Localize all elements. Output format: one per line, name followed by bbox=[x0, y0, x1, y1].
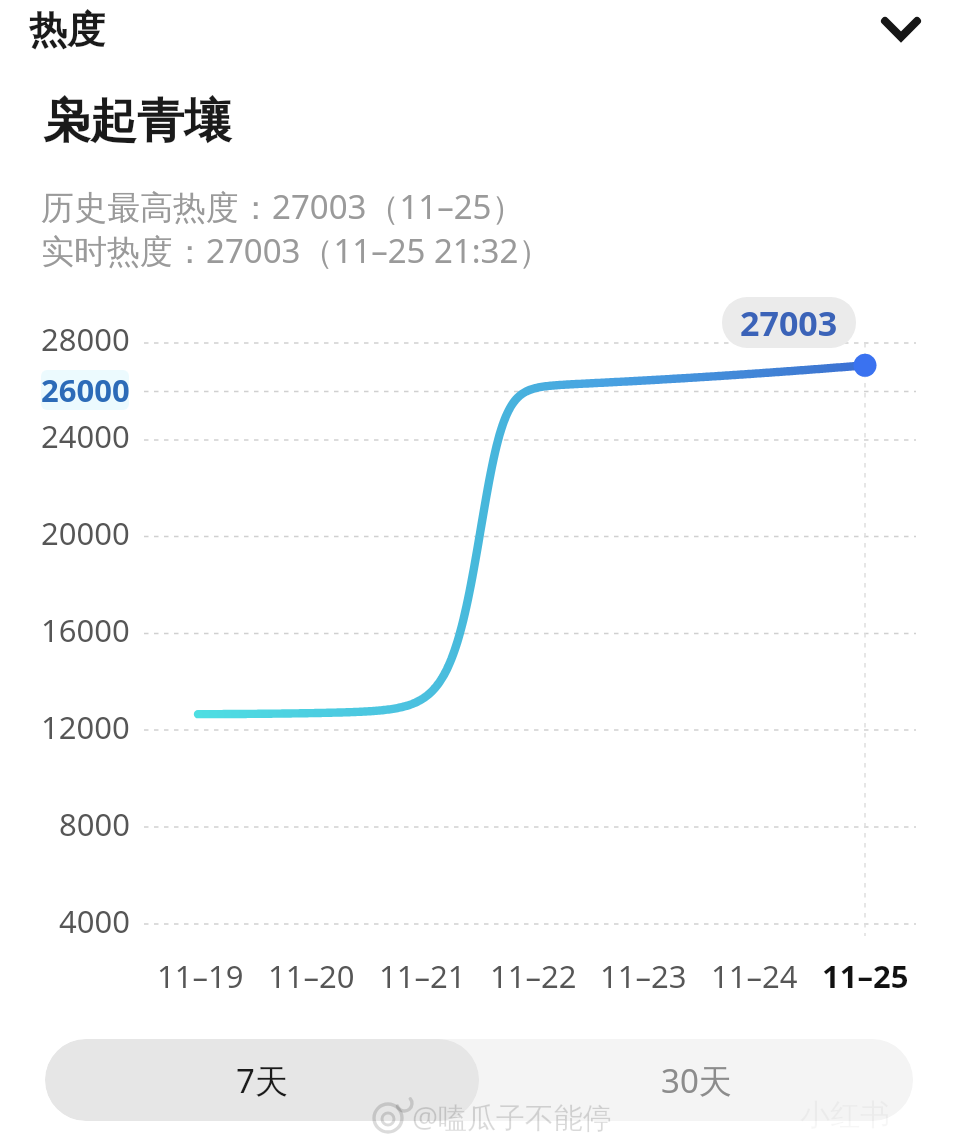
staticText: 11–22 bbox=[490, 955, 577, 995]
staticText: 热度 bbox=[29, 6, 105, 54]
staticText: 11–19 bbox=[157, 955, 244, 995]
staticText: 枭起青壤 bbox=[43, 92, 231, 151]
staticText: 11–23 bbox=[600, 955, 687, 995]
staticText: 12000 bbox=[41, 706, 130, 748]
staticText: 实时热度：27003（11–25 21:32） bbox=[41, 228, 552, 273]
staticText: 小红书 bbox=[800, 1096, 890, 1134]
staticText: 11–24 bbox=[711, 955, 798, 995]
staticText: 30天 bbox=[661, 1058, 732, 1103]
staticText: 28000 bbox=[41, 318, 130, 360]
staticText: 11–20 bbox=[268, 955, 355, 995]
button[interactable]: 30天 bbox=[479, 1039, 913, 1121]
staticText: 4000 bbox=[59, 900, 130, 942]
staticText: 11–25 bbox=[822, 955, 909, 995]
staticText: 16000 bbox=[41, 609, 130, 651]
staticText: 11–21 bbox=[379, 955, 466, 995]
button[interactable]: 7天 bbox=[45, 1039, 479, 1121]
staticText: 7天 bbox=[236, 1058, 288, 1103]
staticText: 历史最高热度：27003（11–25） bbox=[41, 184, 525, 229]
staticText: 8000 bbox=[59, 803, 130, 845]
button[interactable]: Collapse bbox=[870, 0, 932, 60]
staticText: 26000 bbox=[41, 369, 130, 411]
staticText: 24000 bbox=[41, 415, 130, 457]
staticText: 20000 bbox=[41, 512, 130, 554]
staticText: @嗑瓜子不能停 bbox=[412, 1097, 613, 1137]
staticText: 27003 bbox=[740, 300, 838, 346]
